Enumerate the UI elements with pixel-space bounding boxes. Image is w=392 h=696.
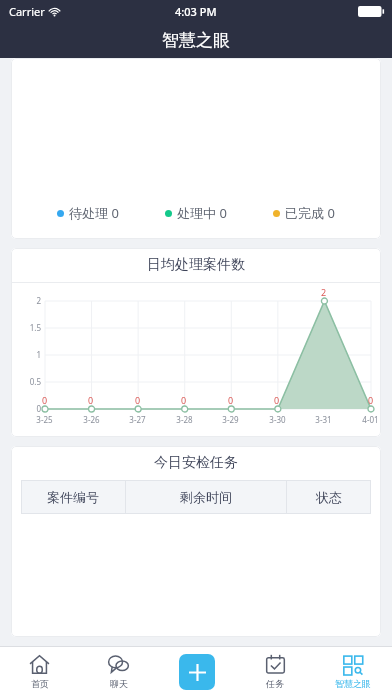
staticText: 任务 (266, 678, 284, 689)
staticText: 2 (36, 295, 41, 306)
staticText: 0 (274, 394, 280, 406)
staticText: 今日安检任务 (154, 454, 238, 472)
staticText: 日均处理案件数 (147, 256, 245, 274)
button[interactable]: 已完成 0 (273, 204, 335, 222)
staticText: 3-29 (222, 414, 239, 425)
staticText: 0 (228, 394, 234, 406)
staticText: 2 (321, 286, 327, 298)
staticText: 聊天 (110, 678, 128, 689)
staticText: 状态 (316, 489, 342, 505)
staticText: 1 (36, 349, 41, 360)
button[interactable]: 待处理 0 (57, 204, 119, 222)
button[interactable]: Add (158, 647, 236, 696)
staticText: 0 (88, 394, 94, 406)
staticText: 3-27 (129, 414, 146, 425)
staticText: 4-01 (362, 414, 379, 425)
staticText: 4:03 PM (175, 4, 217, 19)
button[interactable]: 任务 (236, 647, 314, 696)
staticText: 3-30 (269, 414, 286, 425)
staticText: 案件编号 (47, 489, 99, 505)
staticText: 0.5 (29, 376, 41, 387)
staticText: 已完成 0 (285, 204, 335, 222)
staticText: 3-28 (176, 414, 193, 425)
staticText: 0 (36, 403, 41, 414)
staticText: 0 (181, 394, 187, 406)
staticText: 3-25 (36, 414, 53, 425)
staticText: 0 (368, 394, 374, 406)
staticText: 剩余时间 (180, 489, 232, 505)
staticText: 0 (42, 394, 48, 406)
staticText: 智慧之眼 (335, 678, 371, 689)
staticText: 处理中 0 (177, 204, 227, 222)
button[interactable]: 聊天 (79, 647, 158, 696)
staticText: Carrier (9, 4, 45, 19)
button[interactable]: 首页 (0, 647, 79, 696)
button[interactable]: 智慧之眼 (314, 647, 392, 696)
staticText: 3-26 (83, 414, 100, 425)
staticText: 1.5 (29, 322, 41, 333)
staticText: 3-31 (315, 414, 332, 425)
staticText: 0 (135, 394, 141, 406)
staticText: 智慧之眼 (162, 30, 230, 51)
staticText: 待处理 0 (69, 204, 119, 222)
button[interactable]: 处理中 0 (165, 204, 227, 222)
staticText: 首页 (31, 678, 49, 689)
